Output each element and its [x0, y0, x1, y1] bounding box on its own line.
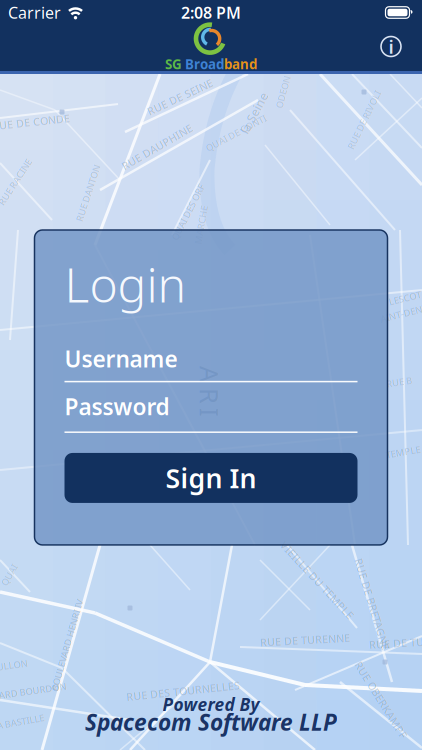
staticText: i: [388, 34, 393, 59]
staticText: band: [224, 55, 257, 73]
staticText: RUE DANTON: [58, 187, 117, 199]
button[interactable]: Password: [64, 382, 357, 433]
staticText: R: [201, 379, 217, 413]
staticText: 2:08 PM: [181, 2, 241, 23]
staticText: RUE DAUPHINE: [117, 140, 197, 154]
staticText: BOULEVARD HENRI IV: [19, 639, 114, 651]
staticText: VARD BOURDON: [0, 685, 66, 697]
staticText: Spacecom Software LLP: [85, 707, 337, 737]
staticText: QUAI: [0, 569, 20, 581]
staticText: ODEON: [266, 86, 299, 98]
staticText: Carrier: [8, 2, 61, 23]
staticText: Broad: [185, 55, 224, 73]
button[interactable]: Username: [64, 316, 357, 382]
staticText: Sign In: [165, 460, 256, 496]
staticText: LESCOT: [388, 292, 421, 304]
staticText: LA BASTILLE: [0, 716, 44, 728]
staticText: TEMPLE: [385, 446, 420, 458]
staticText: RUE OBERKAMPF: [336, 693, 422, 707]
staticText: RUE DE SEINE: [144, 90, 215, 104]
staticText: SG: [165, 55, 185, 73]
staticText: la Seine: [231, 105, 276, 121]
staticText: MARCHE: [181, 219, 220, 231]
staticText: AINT-DENIS: [379, 307, 422, 319]
staticText: Powered By: [162, 693, 259, 716]
staticText: RUE DE TURENNE: [260, 633, 350, 647]
staticText: I: [205, 396, 214, 429]
staticText: QUAI DE CONTI: [202, 127, 269, 139]
staticText: RUE DE CONDE: [0, 115, 70, 129]
button[interactable]: Sign In: [64, 453, 357, 503]
staticText: RUE DES TOURNELLES: [126, 684, 240, 698]
staticText: ULLON: [0, 659, 27, 671]
button[interactable]: Info: [380, 35, 402, 57]
staticText: A: [201, 357, 217, 391]
staticText: RUE DE BRETAGNE: [324, 597, 419, 611]
staticText: RUE RACINE: [0, 176, 41, 188]
staticText: QUAI DES ORF: [157, 206, 219, 218]
staticText: RUE DE RIVOLI: [332, 114, 396, 126]
staticText: Password: [64, 391, 169, 421]
staticText: Username: [64, 344, 177, 374]
staticText: RUE B: [386, 376, 412, 388]
staticText: VIEILLE DU TEMPLE: [266, 573, 368, 587]
staticText: Login: [64, 252, 186, 316]
staticText: RUE DE TUR: [369, 636, 422, 650]
